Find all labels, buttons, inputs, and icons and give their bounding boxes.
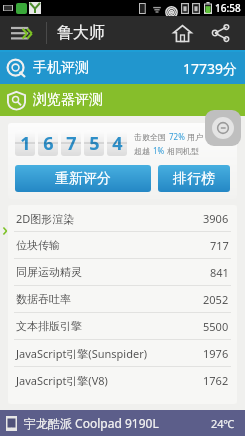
staticText: 2D图形渲染 xyxy=(16,211,75,226)
button[interactable]: JavaScript引擎(Sunspider) xyxy=(8,340,237,366)
staticText: 717 xyxy=(210,238,229,253)
staticText: 17739分 xyxy=(183,59,238,78)
button[interactable]: Menu xyxy=(0,16,46,50)
staticText: 24℃ xyxy=(211,416,235,431)
staticText: 重新评分 xyxy=(55,170,111,188)
staticText: 5 xyxy=(89,131,100,156)
button[interactable]: Home xyxy=(163,16,201,50)
button[interactable]: 数据吞吐率 xyxy=(8,286,237,312)
staticText: 浏览器评测 xyxy=(33,91,103,109)
staticText: 16:58 xyxy=(215,1,241,15)
staticText: 用户 xyxy=(185,131,204,142)
button[interactable]: 文本排版引擎 xyxy=(8,313,237,339)
button[interactable]: 排行榜 xyxy=(158,165,230,192)
staticText: 7 xyxy=(66,131,77,156)
staticText: 相同机型 xyxy=(165,145,200,156)
staticText: 3906 xyxy=(203,211,229,226)
staticText: 2052 xyxy=(203,292,229,307)
staticText: 手机评测 xyxy=(33,59,89,77)
staticText: 击败全国 xyxy=(134,131,169,142)
staticText: 4 xyxy=(112,131,123,156)
staticText: 72% xyxy=(169,131,185,142)
staticText: JavaScript引擎(V8) xyxy=(16,373,108,388)
staticText: 排行榜 xyxy=(173,170,215,188)
staticText: 数据吞吐率 xyxy=(16,292,71,306)
staticText: 1% xyxy=(153,145,165,156)
button[interactable]: JavaScript引擎(V8) xyxy=(8,367,237,393)
button[interactable]: 位块传输 xyxy=(8,232,237,258)
button[interactable]: 重新评分 xyxy=(15,165,151,192)
button[interactable]: 2D图形渲染 xyxy=(8,205,237,231)
staticText: 宇龙酷派 Coolpad 9190L xyxy=(24,415,159,431)
staticText: 鲁大师 xyxy=(57,23,105,43)
staticText: 超越 xyxy=(134,145,153,156)
staticText: 1 xyxy=(20,131,31,156)
staticText: JavaScript引擎(Sunspider) xyxy=(16,346,147,361)
staticText: 5500 xyxy=(203,319,229,334)
button[interactable]: 浏览器评测 xyxy=(0,84,245,116)
staticText: 同屏运动精灵 xyxy=(16,265,82,279)
staticText: 1976 xyxy=(203,346,229,361)
button[interactable]: 宇龙酷派 Coolpad 9190L xyxy=(0,410,245,436)
button[interactable]: Share xyxy=(201,16,241,50)
button[interactable]: 同屏运动精灵 xyxy=(8,259,237,285)
staticText: 1762 xyxy=(203,373,229,388)
button[interactable]: Floating assistant xyxy=(205,110,241,146)
staticText: 位块传输 xyxy=(16,238,60,252)
button[interactable]: 手机评测 xyxy=(0,52,245,84)
staticText: 文本排版引擎 xyxy=(16,319,82,333)
staticText: 6 xyxy=(43,131,54,156)
staticText: 841 xyxy=(210,265,229,280)
